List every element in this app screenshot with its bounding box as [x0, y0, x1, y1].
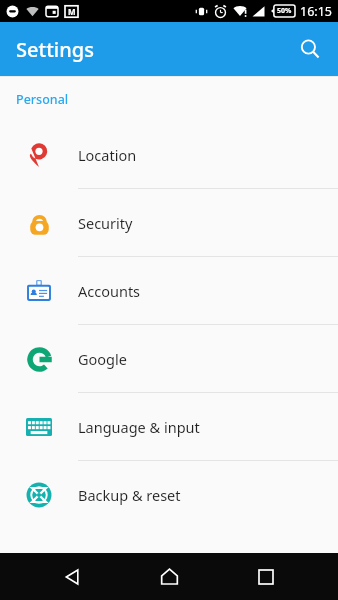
button[interactable]: Security [0, 189, 338, 256]
button[interactable]: Back [49, 553, 97, 600]
staticText: Personal [16, 91, 69, 108]
button[interactable]: Search [290, 29, 330, 69]
button[interactable]: Google [0, 325, 338, 392]
button[interactable]: Language & input [0, 393, 338, 460]
staticText: Backup & reset [78, 485, 181, 505]
staticText: Settings [16, 36, 94, 63]
staticText: Google [78, 349, 127, 369]
button[interactable]: Home [145, 553, 193, 600]
staticText: M [68, 6, 76, 17]
staticText: Language & input [78, 417, 200, 437]
staticText: Security [78, 213, 133, 233]
staticText: 50% [277, 6, 292, 16]
button[interactable]: Accounts [0, 257, 338, 324]
staticText: Accounts [78, 281, 141, 301]
staticText: 16:15 [300, 3, 332, 20]
button[interactable]: Backup & reset [0, 461, 338, 528]
staticText: Location [78, 145, 137, 165]
button[interactable]: Location [0, 121, 338, 188]
button[interactable]: Recents [242, 553, 290, 600]
